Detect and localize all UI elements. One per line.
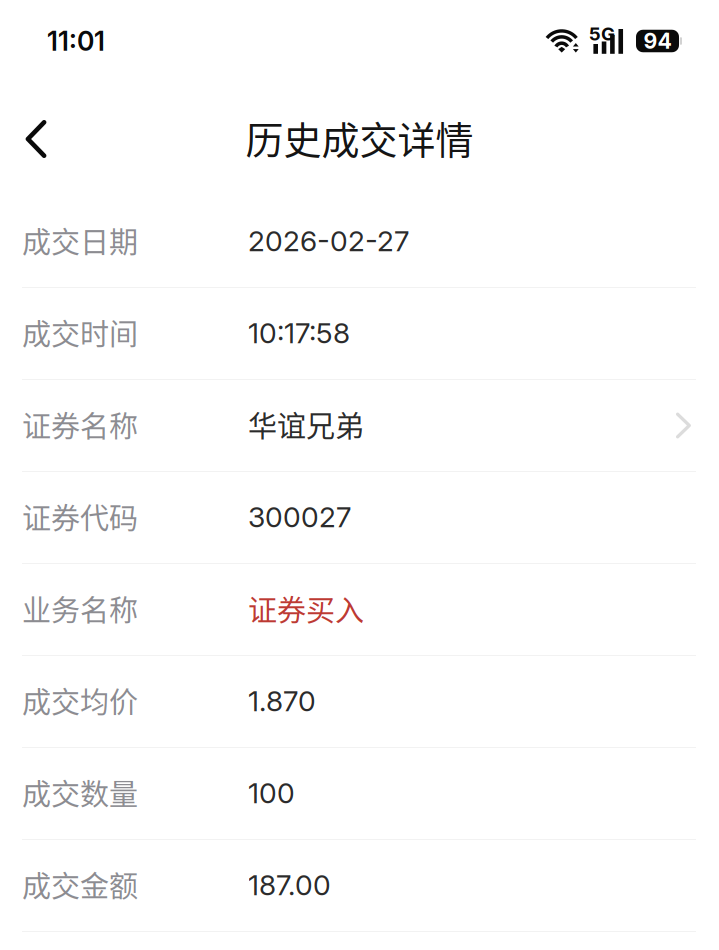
staticText: 历史成交详情 <box>245 110 473 165</box>
staticText: 100 <box>248 776 295 810</box>
button[interactable]: 证券名称 <box>0 380 719 472</box>
staticText: 证券买入 <box>248 587 364 630</box>
staticText: 300027 <box>248 500 351 534</box>
staticText: 成交时间 <box>22 311 138 354</box>
button[interactable]: Back <box>0 82 72 196</box>
staticText: 94 <box>643 28 671 54</box>
staticText: 2026-02-27 <box>248 224 409 258</box>
staticText: 187.00 <box>248 868 331 902</box>
staticText: 11:01 <box>47 25 105 57</box>
staticText: 成交日期 <box>22 219 138 262</box>
staticText: 证券名称 <box>22 403 138 446</box>
staticText: 1.870 <box>248 684 316 718</box>
staticText: 10:17:58 <box>248 316 350 350</box>
staticText: 证券代码 <box>22 495 138 538</box>
staticText: 华谊兄弟 <box>248 403 364 446</box>
staticText: 成交均价 <box>22 679 138 722</box>
staticText: 成交数量 <box>22 771 138 814</box>
staticText: 成交金额 <box>22 863 138 906</box>
staticText: 业务名称 <box>22 587 138 630</box>
staticText: 5G <box>589 22 615 45</box>
